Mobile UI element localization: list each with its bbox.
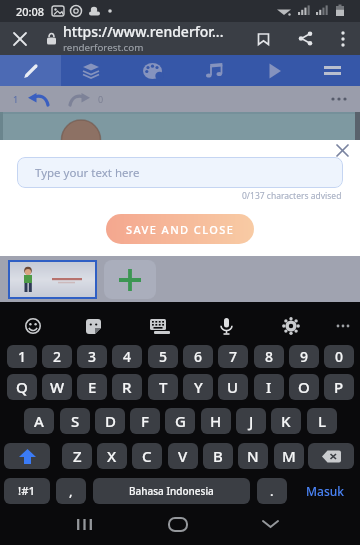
button[interactable]: Q bbox=[7, 374, 37, 400]
button[interactable] bbox=[245, 55, 305, 86]
staticText: renderforest.com bbox=[63, 41, 144, 54]
button[interactable]: . bbox=[257, 478, 287, 504]
button[interactable]: N bbox=[238, 443, 268, 469]
button[interactable]: , bbox=[56, 478, 86, 504]
button[interactable]: O bbox=[289, 374, 319, 400]
staticText: B bbox=[213, 446, 223, 466]
staticText: I bbox=[266, 377, 272, 397]
button[interactable]: Bahasa Indonesia bbox=[93, 478, 250, 504]
button[interactable]: 1 bbox=[7, 345, 37, 368]
staticText: D bbox=[105, 411, 116, 431]
button[interactable] bbox=[19, 313, 47, 339]
button[interactable]: K bbox=[271, 408, 301, 434]
button[interactable]: V bbox=[168, 443, 198, 469]
button[interactable]: H bbox=[201, 408, 231, 434]
staticText: R bbox=[122, 377, 132, 397]
staticText: X bbox=[107, 446, 117, 466]
button[interactable] bbox=[256, 513, 284, 535]
staticText: Bahasa Indonesia bbox=[129, 484, 214, 498]
button[interactable]: G bbox=[165, 408, 195, 434]
staticText: M bbox=[282, 446, 296, 466]
staticText: Y bbox=[194, 377, 203, 397]
staticText: N bbox=[247, 446, 259, 466]
button[interactable]: Type your text here bbox=[17, 157, 343, 188]
staticText: U bbox=[227, 377, 239, 397]
button[interactable]: L bbox=[307, 408, 337, 434]
button[interactable] bbox=[79, 313, 107, 339]
button[interactable] bbox=[308, 443, 354, 469]
button[interactable] bbox=[284, 22, 326, 55]
staticText: 7 bbox=[229, 347, 238, 366]
button[interactable] bbox=[4, 443, 50, 469]
button[interactable] bbox=[212, 313, 240, 339]
button[interactable]: C bbox=[132, 443, 162, 469]
button[interactable] bbox=[326, 22, 360, 55]
button[interactable] bbox=[277, 313, 305, 339]
staticText: 1 bbox=[18, 347, 27, 366]
button[interactable]: https://www.renderfor... bbox=[63, 22, 242, 54]
button[interactable]: SAVE AND CLOSE bbox=[106, 214, 254, 244]
button[interactable]: U bbox=[218, 374, 248, 400]
button[interactable]: T bbox=[148, 374, 178, 400]
button[interactable]: D bbox=[95, 408, 125, 434]
button[interactable]: X bbox=[97, 443, 127, 469]
button[interactable]: I bbox=[254, 374, 284, 400]
button[interactable] bbox=[0, 55, 61, 86]
button[interactable]: 6 bbox=[183, 345, 213, 368]
button[interactable]: R bbox=[112, 374, 142, 400]
button[interactable]: !#1 bbox=[4, 478, 50, 504]
button[interactable]: 2 bbox=[42, 345, 72, 368]
button[interactable]: 3 bbox=[77, 345, 107, 368]
staticText: !#1 bbox=[18, 483, 36, 499]
button[interactable]: 9 bbox=[289, 345, 319, 368]
staticText: . bbox=[270, 482, 274, 500]
staticText: 0 bbox=[98, 93, 104, 105]
button[interactable]: F bbox=[130, 408, 160, 434]
button[interactable] bbox=[336, 144, 349, 157]
button[interactable]: Masuk bbox=[293, 478, 356, 504]
staticText: E bbox=[88, 377, 97, 397]
staticText: O bbox=[298, 377, 310, 397]
staticText: 20:08 bbox=[16, 4, 45, 19]
staticText: 0 bbox=[335, 347, 344, 366]
staticText: , bbox=[69, 482, 73, 500]
button[interactable]: 4 bbox=[112, 345, 142, 368]
button[interactable]: P bbox=[324, 374, 354, 400]
button[interactable] bbox=[164, 513, 192, 535]
button[interactable] bbox=[242, 22, 284, 55]
button[interactable] bbox=[0, 22, 40, 55]
button[interactable] bbox=[8, 260, 97, 299]
button[interactable] bbox=[330, 313, 356, 339]
button[interactable] bbox=[61, 55, 121, 86]
button[interactable]: 8 bbox=[254, 345, 284, 368]
button[interactable] bbox=[104, 260, 156, 299]
button[interactable]: 0 bbox=[324, 345, 354, 368]
staticText: Type your text here bbox=[35, 165, 140, 181]
button[interactable]: E bbox=[77, 374, 107, 400]
staticText: 8 bbox=[265, 347, 274, 366]
staticText: 3 bbox=[88, 347, 97, 366]
staticText: Masuk bbox=[306, 483, 344, 499]
button[interactable] bbox=[26, 90, 52, 108]
button[interactable]: 5 bbox=[148, 345, 178, 368]
button[interactable] bbox=[66, 90, 92, 108]
staticText: G bbox=[175, 411, 186, 431]
staticText: T bbox=[159, 377, 168, 397]
button[interactable] bbox=[305, 55, 360, 86]
button[interactable]: A bbox=[24, 408, 54, 434]
button[interactable]: Y bbox=[183, 374, 213, 400]
button[interactable] bbox=[70, 513, 99, 535]
button[interactable]: J bbox=[236, 408, 266, 434]
button[interactable]: W bbox=[42, 374, 72, 400]
button[interactable]: 7 bbox=[218, 345, 248, 368]
staticText: 5 bbox=[159, 347, 168, 366]
button[interactable] bbox=[146, 313, 174, 339]
button[interactable]: S bbox=[60, 408, 90, 434]
button[interactable]: M bbox=[274, 443, 304, 469]
button[interactable]: B bbox=[203, 443, 233, 469]
button[interactable] bbox=[183, 55, 245, 86]
button[interactable]: Z bbox=[62, 443, 92, 469]
staticText: 4 bbox=[123, 347, 132, 366]
staticText: Q bbox=[16, 377, 28, 397]
button[interactable] bbox=[121, 55, 183, 86]
